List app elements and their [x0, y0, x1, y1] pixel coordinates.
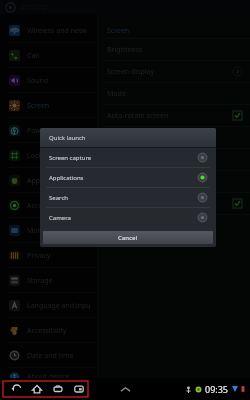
- staticText: 09:35: [205, 383, 229, 395]
- button[interactable]: Wireless and netw: [0, 18, 97, 43]
- staticText: Language and inpu: [27, 301, 91, 311]
- button[interactable]: Lock screen: [0, 143, 97, 168]
- staticText: Mode: [107, 89, 126, 99]
- staticText: Smart stay: [107, 199, 142, 209]
- button[interactable]: Date and time: [0, 343, 97, 368]
- staticText: Accounts: [27, 201, 57, 211]
- button[interactable]: Accessibility: [0, 318, 97, 343]
- button[interactable]: Applications: [40, 168, 216, 187]
- staticText: Call: [27, 51, 39, 61]
- button[interactable]: Privacy: [0, 243, 97, 268]
- button[interactable]: About device: [0, 368, 97, 386]
- staticText: Screen: [27, 101, 50, 111]
- button[interactable]: Smart stay: [98, 193, 250, 214]
- staticText: Date and time: [27, 351, 74, 361]
- staticText: Camera: [49, 214, 71, 222]
- button[interactable]: Screenshot: [71, 381, 87, 397]
- button[interactable]: Quick launch: [98, 149, 250, 170]
- button[interactable]: Home: [29, 381, 45, 397]
- button[interactable]: Sound: [0, 68, 97, 93]
- button[interactable]: Accounts: [0, 193, 97, 218]
- staticText: Screen display: [107, 67, 155, 77]
- button[interactable]: More: [0, 218, 97, 243]
- button[interactable]: Status: [185, 383, 246, 395]
- staticText: Privacy: [27, 251, 51, 261]
- staticText: Search: [49, 194, 68, 202]
- button[interactable]: Camera: [40, 208, 216, 227]
- staticText: Screen: [107, 26, 130, 36]
- staticText: Lock screen: [27, 151, 66, 161]
- staticText: Applications: [49, 174, 84, 182]
- staticText: Cancel: [118, 234, 138, 242]
- button[interactable]: Screen capture: [40, 148, 216, 167]
- button[interactable]: Screen display: [98, 61, 250, 82]
- button[interactable]: Call: [0, 43, 97, 68]
- button[interactable]: Show navigation: [116, 380, 134, 398]
- staticText: More: [27, 226, 45, 236]
- button[interactable]: Screen: [0, 93, 97, 118]
- button[interactable]: Power saving mod: [0, 118, 97, 143]
- button[interactable]: Screen timeout: [98, 171, 250, 192]
- staticText: Brightness: [107, 45, 143, 55]
- button[interactable]: Language and inpu: [0, 293, 97, 318]
- button[interactable]: Search: [40, 188, 216, 207]
- button[interactable]: Recents: [50, 381, 66, 397]
- staticText: Storage: [27, 276, 53, 286]
- button[interactable]: Screen: [98, 23, 250, 38]
- button[interactable]: Application manage: [0, 168, 97, 193]
- staticText: Power saving mod: [27, 126, 88, 136]
- staticText: About device: [27, 372, 70, 382]
- staticText: Auto-rotate screen: [107, 111, 169, 121]
- button[interactable]: Back: [8, 381, 24, 397]
- button[interactable]: Cancel: [43, 231, 213, 244]
- staticText: Wireless and netw: [27, 26, 87, 36]
- staticText: Application manage: [27, 176, 93, 186]
- staticText: Quick launch: [49, 134, 86, 142]
- button[interactable]: Animation: [98, 127, 250, 148]
- button[interactable]: Auto-rotate screen: [98, 105, 250, 126]
- staticText: Screen capture: [49, 154, 92, 162]
- button[interactable]: Storage: [0, 268, 97, 293]
- staticText: Sound: [27, 76, 49, 86]
- staticText: Accessibility: [27, 326, 67, 336]
